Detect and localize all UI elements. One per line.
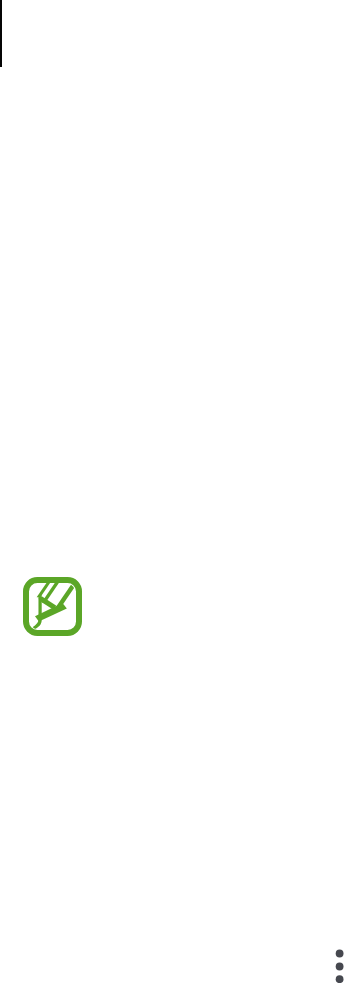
button[interactable]: Notes xyxy=(23,577,82,636)
button[interactable]: More options xyxy=(330,946,345,983)
